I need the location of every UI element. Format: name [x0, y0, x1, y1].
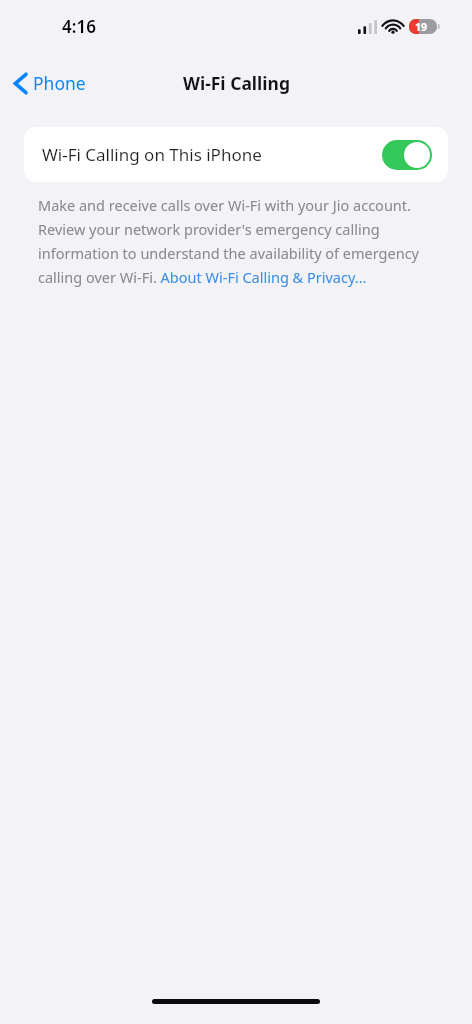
staticText: Wi-Fi Calling: [183, 71, 290, 95]
staticText: 19: [415, 20, 428, 34]
button[interactable]: Wi-Fi Calling toggle, on: [382, 140, 432, 170]
button[interactable]: Phone: [10, 67, 90, 99]
button[interactable]: Make and receive calls over Wi-Fi with y…: [38, 195, 434, 287]
button[interactable]: Wi-Fi Calling on This iPhone: [24, 127, 448, 182]
staticText: Wi-Fi Calling on This iPhone: [42, 143, 382, 166]
staticText: 4:16: [62, 15, 96, 38]
staticText: Phone: [33, 71, 86, 95]
